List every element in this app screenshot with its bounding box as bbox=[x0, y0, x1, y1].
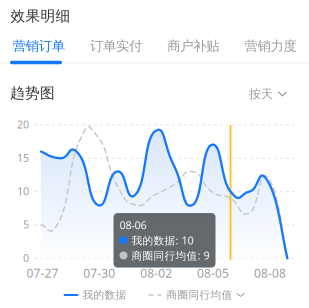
staticText: 按天 bbox=[249, 87, 273, 101]
staticText: 08-06 bbox=[119, 218, 146, 232]
staticText: 07-30 bbox=[83, 265, 115, 281]
button[interactable]: 订单实付 bbox=[77, 35, 154, 57]
staticText: 商圈同行均值: 9 bbox=[131, 248, 209, 263]
staticText: 我的数据 bbox=[82, 288, 126, 301]
staticText: 我的数据: 10 bbox=[131, 233, 193, 247]
staticText: 08-08 bbox=[254, 265, 286, 281]
staticText: 营销力度 bbox=[244, 38, 296, 54]
staticText: 商户补贴 bbox=[167, 38, 219, 54]
staticText: 20 bbox=[17, 117, 29, 131]
button[interactable]: 营销力度 bbox=[232, 35, 309, 57]
staticText: 15 bbox=[17, 151, 29, 165]
staticText: 0 bbox=[23, 251, 29, 265]
staticText: 5 bbox=[23, 217, 29, 232]
staticText: 商圈同行均值 bbox=[166, 288, 232, 301]
staticText: 效果明细 bbox=[10, 7, 70, 25]
staticText: 10 bbox=[17, 184, 29, 198]
button[interactable]: 营销订单 bbox=[0, 35, 77, 57]
staticText: 订单实付 bbox=[90, 38, 142, 54]
staticText: 08-02 bbox=[140, 265, 172, 281]
staticText: 07-27 bbox=[26, 265, 58, 281]
staticText: 趋势图 bbox=[10, 84, 55, 102]
button[interactable]: 按天 bbox=[243, 83, 293, 105]
staticText: 营销订单 bbox=[13, 38, 65, 54]
staticText: 08-05 bbox=[197, 265, 229, 281]
button[interactable]: 商户补贴 bbox=[154, 35, 232, 57]
